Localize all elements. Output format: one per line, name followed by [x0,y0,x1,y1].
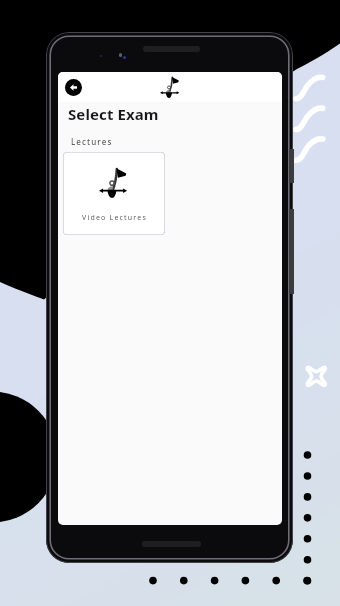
button[interactable]: App logo [157,74,183,100]
staticText: Select Exam [68,104,159,124]
button[interactable]: Video Lectures [63,152,165,235]
staticText: Lectures [71,136,113,147]
button[interactable]: Back [61,75,85,99]
staticText: Video Lectures [82,213,147,223]
